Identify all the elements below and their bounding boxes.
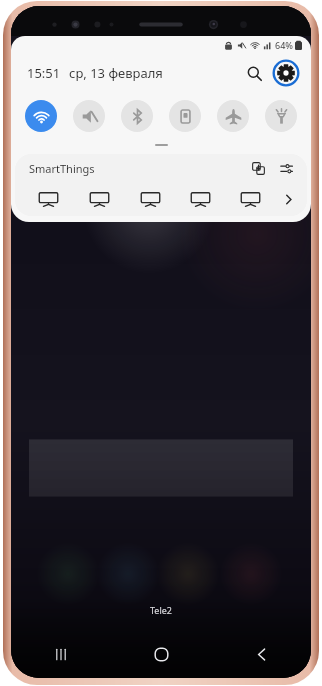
button[interactable]: Recents [11,630,111,678]
button[interactable]: Auto rotate [169,100,201,132]
button[interactable]: Device 1 [23,182,74,216]
staticText: 64% [275,39,293,51]
button[interactable]: Cast [247,157,269,179]
button[interactable]: Back [211,630,311,678]
button[interactable]: Settings [275,157,297,179]
button[interactable]: Bluetooth [121,100,153,132]
button[interactable]: Airplane mode [217,100,249,132]
staticText: 15:51 [27,64,61,82]
button[interactable]: Settings [271,58,301,88]
button[interactable]: Device 2 [74,182,125,216]
button[interactable]: Mute [73,100,105,132]
button[interactable]: Device 3 [125,182,175,216]
staticText: ср, 13 февраля [69,64,163,82]
button[interactable]: Flashlight [265,100,297,132]
button[interactable]: Home [111,630,211,678]
staticText: Tele2 [150,604,172,616]
button[interactable]: Device 5 [225,182,275,216]
button[interactable]: Wi-Fi [25,100,57,132]
button[interactable]: Device 4 [175,182,225,216]
button[interactable]: Search [239,58,269,88]
button[interactable]: More devices [275,182,301,216]
staticText: SmartThings [29,161,95,176]
